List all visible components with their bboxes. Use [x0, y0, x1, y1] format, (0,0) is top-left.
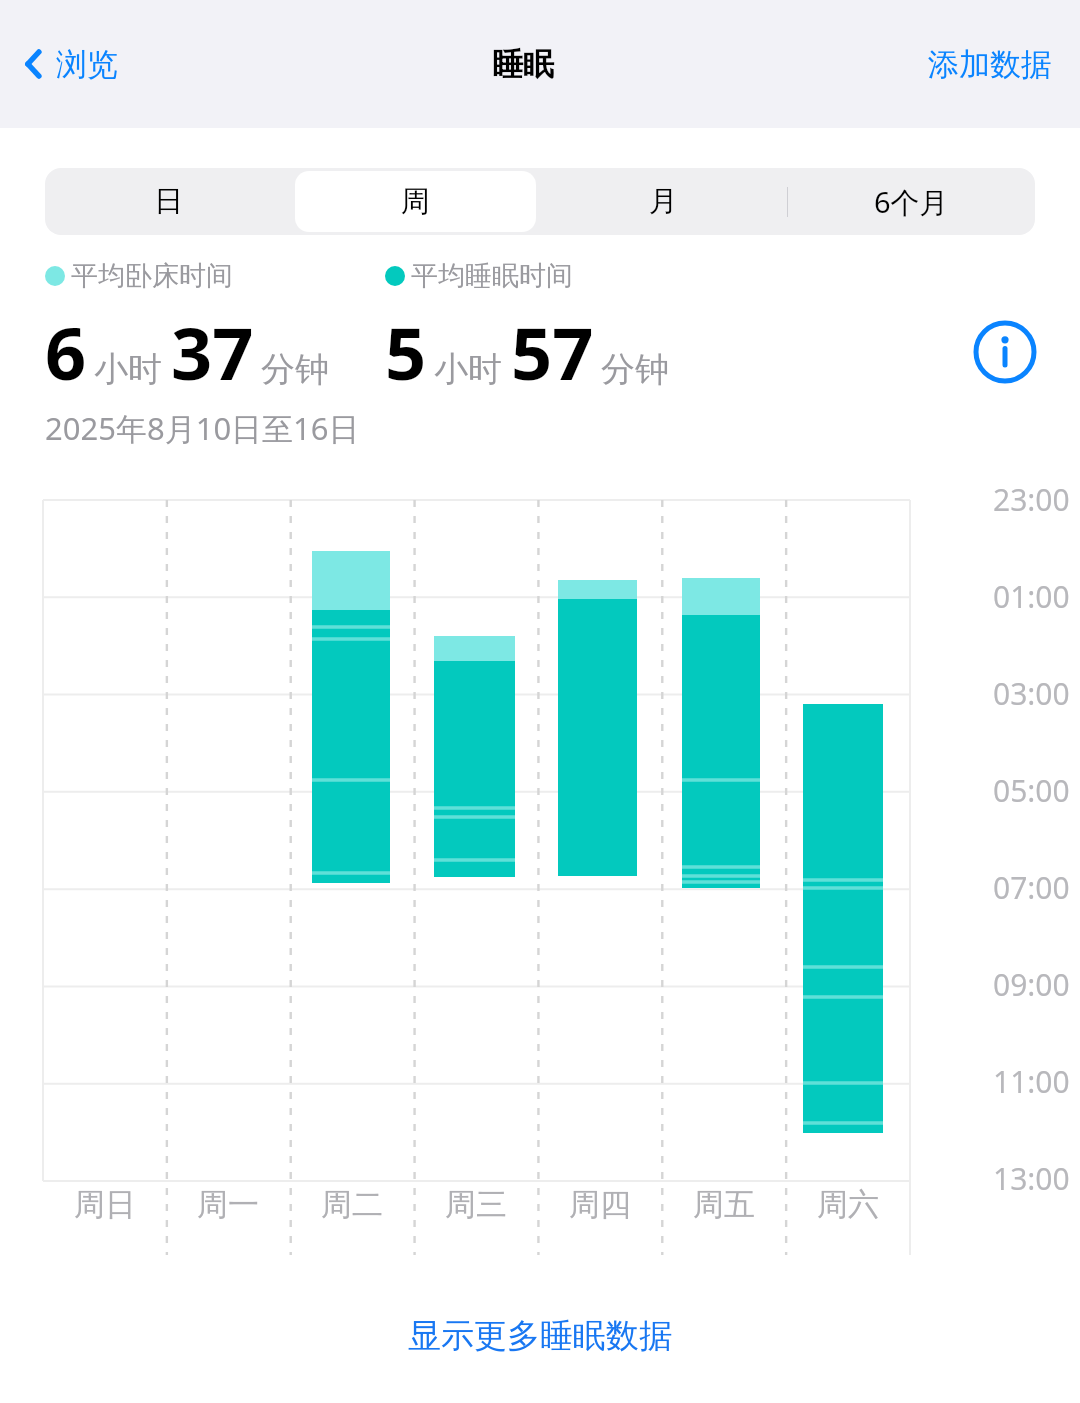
staticText: 周五	[693, 1185, 755, 1224]
staticText: 分钟	[601, 348, 669, 391]
staticText: 周六	[817, 1185, 879, 1224]
staticText: 07:00	[993, 867, 1070, 908]
staticText: 57	[511, 303, 594, 401]
staticText: 周四	[569, 1185, 631, 1224]
staticText: 6	[45, 303, 87, 401]
staticText: 2025年8月10日至16日	[45, 407, 360, 449]
staticText: 6个月	[874, 182, 949, 222]
staticText: 月	[649, 183, 678, 220]
staticText: 周三	[445, 1185, 507, 1224]
staticText: 09:00	[993, 964, 1070, 1005]
button[interactable]: 信息	[970, 317, 1040, 387]
staticText: 小时	[94, 348, 162, 391]
staticText: 23:00	[993, 479, 1070, 520]
staticText: 11:00	[993, 1061, 1070, 1102]
staticText: 平均睡眠时间	[411, 259, 573, 293]
staticText: 显示更多睡眠数据	[408, 1315, 672, 1357]
staticText: 睡眠	[492, 45, 554, 84]
staticText: 日	[154, 183, 183, 220]
button[interactable]: 月	[542, 171, 784, 232]
staticText: 03:00	[993, 673, 1070, 714]
staticText: 平均卧床时间	[71, 259, 233, 293]
staticText: 01:00	[993, 576, 1070, 617]
staticText: 分钟	[261, 348, 329, 391]
staticText: 周日	[74, 1185, 136, 1224]
staticText: 周二	[321, 1185, 383, 1224]
staticText: 周	[401, 183, 430, 220]
button[interactable]: 浏览	[20, 38, 122, 90]
button[interactable]: 显示更多睡眠数据	[0, 1315, 1080, 1357]
staticText: 浏览	[56, 45, 118, 84]
button[interactable]: 6个月	[787, 168, 1035, 235]
staticText: 05:00	[993, 770, 1070, 811]
button[interactable]: 周	[295, 171, 536, 232]
staticText: 5	[385, 303, 427, 401]
staticText: 小时	[434, 348, 502, 391]
staticText: 37	[171, 303, 254, 401]
staticText: 添加数据	[928, 45, 1052, 84]
staticText: 13:00	[993, 1158, 1070, 1199]
button[interactable]: 日	[48, 171, 289, 232]
staticText: 周一	[197, 1185, 259, 1224]
button[interactable]: 添加数据	[924, 37, 1056, 92]
